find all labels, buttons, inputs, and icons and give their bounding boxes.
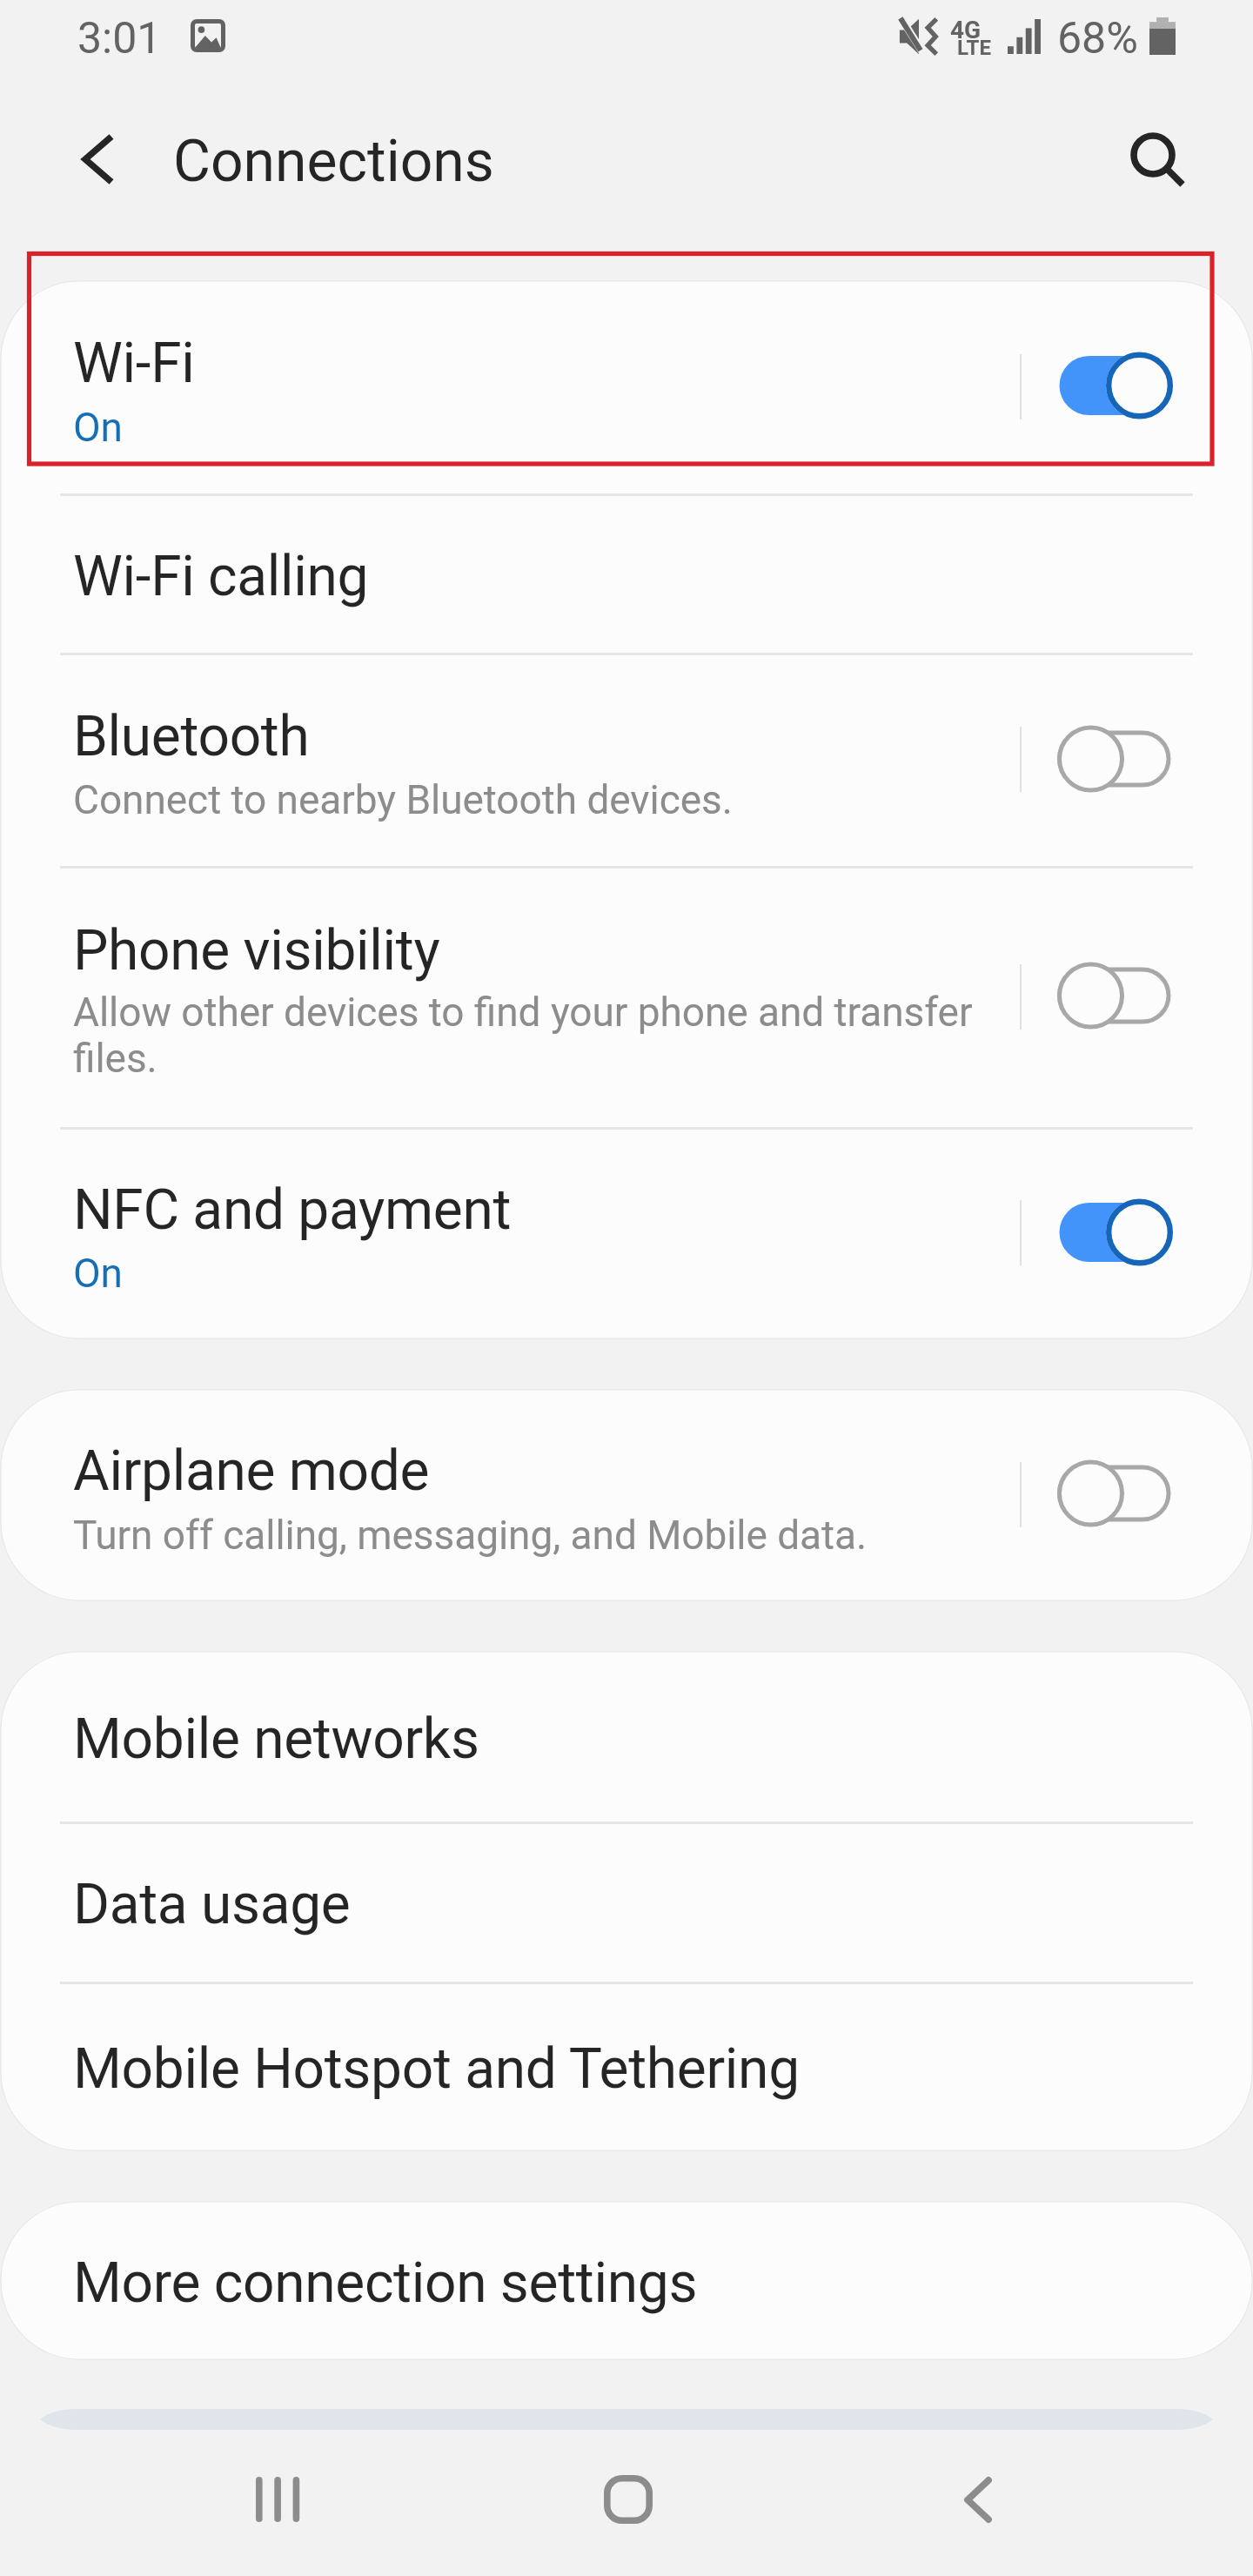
button[interactable]: Mobile Hotspot and Tethering	[0, 1982, 1253, 2151]
button[interactable]: Home	[559, 2430, 698, 2569]
button[interactable]: Airplane mode	[0, 1389, 1253, 1601]
button[interactable]: Back	[908, 2430, 1048, 2569]
button[interactable]: Off	[1057, 724, 1176, 794]
button[interactable]: Search	[1111, 112, 1207, 208]
button[interactable]: Data usage	[0, 1822, 1253, 1982]
button[interactable]: More connection settings	[0, 2201, 1253, 2360]
button[interactable]	[35, 2402, 1218, 2437]
staticText: NFC and payment	[73, 1177, 1013, 1243]
staticText: Connect to nearby Bluetooth devices.	[73, 776, 1013, 823]
staticText: 68%	[1057, 13, 1138, 64]
staticText: On	[73, 404, 1013, 451]
button[interactable]: On	[1057, 1197, 1176, 1267]
staticText: Wi-Fi	[73, 331, 1013, 396]
staticText: Wi-Fi calling	[73, 544, 1013, 609]
button[interactable]: On	[1057, 351, 1176, 420]
staticText: 4G	[950, 16, 982, 44]
staticText: More connection settings	[73, 2251, 1013, 2316]
staticText: LTE	[957, 36, 991, 60]
button[interactable]: Phone visibility	[0, 867, 1253, 1128]
button[interactable]: Recent apps	[208, 2430, 347, 2569]
staticText: On	[73, 1250, 1013, 1297]
staticText: Allow other devices to find your phone a…	[73, 989, 995, 1082]
button[interactable]: Bluetooth	[0, 654, 1253, 867]
button[interactable]: Off	[1057, 961, 1176, 1030]
staticText: Bluetooth	[73, 704, 1013, 769]
button[interactable]: Wi-Fi calling	[0, 494, 1253, 654]
staticText: Connections	[173, 128, 494, 195]
staticText: Turn off calling, messaging, and Mobile …	[73, 1512, 1013, 1559]
staticText: Data usage	[73, 1872, 1013, 1937]
button[interactable]: Wi-Fi	[0, 280, 1253, 494]
button[interactable]: Off	[1057, 1459, 1176, 1528]
button[interactable]: Navigate up	[50, 111, 146, 207]
button[interactable]: NFC and payment	[0, 1128, 1253, 1339]
staticText: Phone visibility	[73, 918, 995, 983]
button[interactable]: Mobile networks	[0, 1651, 1253, 1822]
staticText: 3:01	[77, 13, 162, 64]
staticText: Mobile Hotspot and Tethering	[73, 2036, 1013, 2102]
staticText: Airplane mode	[73, 1439, 1013, 1504]
staticText: Mobile networks	[73, 1707, 1013, 1772]
